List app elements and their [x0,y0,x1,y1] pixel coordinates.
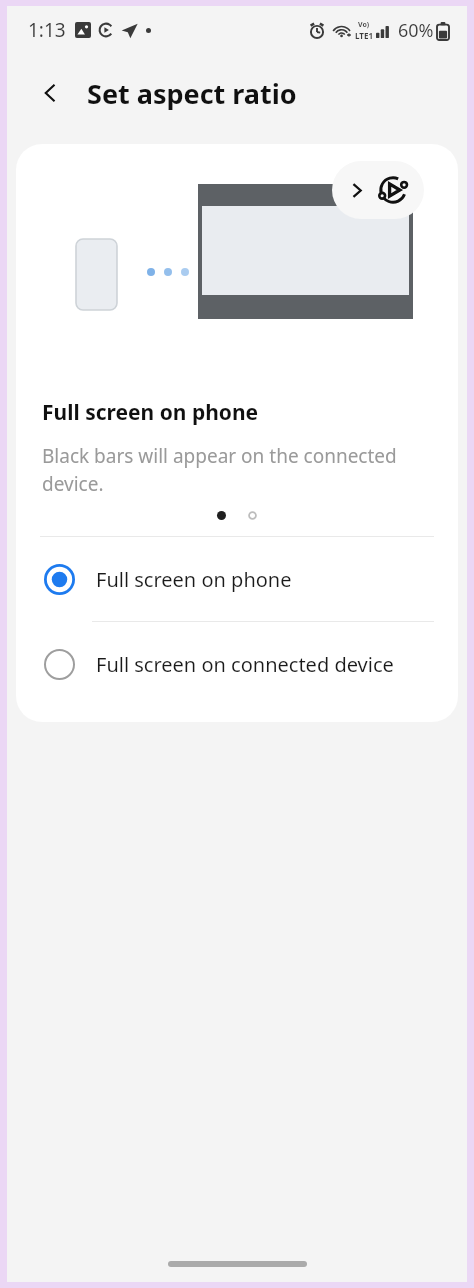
staticText: Full screen on phone [96,566,292,593]
staticText: 1:13 [28,17,66,43]
staticText: LTE1 [355,30,373,41]
button[interactable]: Full screen on connected device [16,622,458,706]
button[interactable]: Full screen on phone [16,537,458,621]
staticText: Full screen on phone [42,398,259,427]
staticText: 60% [398,18,434,43]
staticText: Vo) [358,20,370,30]
button[interactable]: Back [29,71,73,115]
staticText: Black bars will appear on the connected … [42,443,397,497]
staticText: Set aspect ratio [87,75,297,112]
button[interactable]: Switch aspect ratio [332,161,424,219]
staticText: Full screen on connected device [96,651,394,678]
